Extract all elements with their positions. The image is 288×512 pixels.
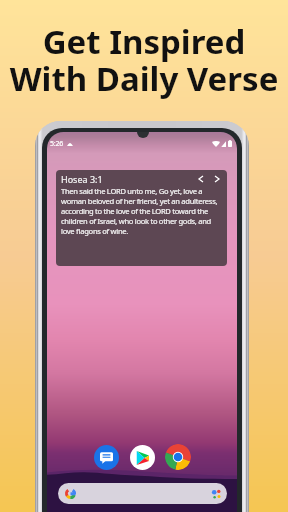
button[interactable]: Google search [58,483,227,504]
button[interactable]: Next verse [211,173,223,184]
staticText: Get Inspired With Daily Verse [0,19,288,101]
staticText: 5:26 [50,139,64,149]
staticText: Then said the LORD unto me, Go yet, love… [61,186,223,236]
button[interactable]: Play Store [130,445,155,470]
button[interactable]: Hosea 3:1 [56,170,227,266]
button[interactable]: Chrome [165,444,191,470]
button[interactable]: Messages [94,445,119,470]
button[interactable]: Previous verse [195,173,207,184]
staticText: Hosea 3:1 [61,173,103,184]
